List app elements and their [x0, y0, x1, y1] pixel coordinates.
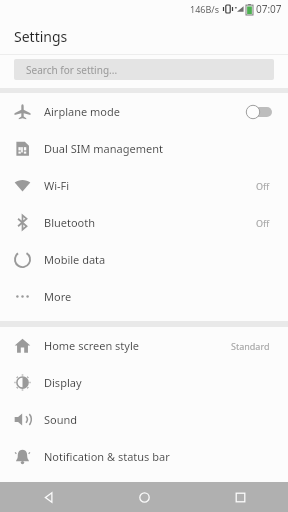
- staticText: More: [44, 289, 288, 304]
- button[interactable]: Display: [0, 364, 288, 401]
- staticText: Display: [44, 375, 288, 390]
- staticText: Airplane mode: [44, 104, 246, 119]
- button[interactable]: Sound: [0, 401, 288, 438]
- staticText: Dual SIM management: [44, 141, 288, 156]
- staticText: Off: [256, 180, 270, 192]
- button[interactable]: Search for setting...: [14, 59, 274, 80]
- staticText: Settings: [14, 27, 68, 46]
- staticText: Wi-Fi: [44, 178, 256, 193]
- button[interactable]: Bluetooth: [0, 204, 288, 241]
- button[interactable]: Airplane mode: [0, 93, 288, 130]
- button[interactable]: Back: [0, 482, 96, 512]
- button[interactable]: Notification & status bar: [0, 438, 288, 475]
- staticText: Mobile data: [44, 252, 288, 267]
- button[interactable]: Mobile data: [0, 241, 288, 278]
- staticText: Notification & status bar: [44, 449, 288, 464]
- button[interactable]: Home: [96, 482, 192, 512]
- staticText: Bluetooth: [44, 215, 256, 230]
- button[interactable]: Dual SIM management: [0, 130, 288, 167]
- staticText: Standard: [231, 340, 270, 352]
- button[interactable]: Wi-Fi: [0, 167, 288, 204]
- staticText: 07:07: [256, 2, 282, 16]
- button[interactable]: Recent apps: [192, 482, 288, 512]
- button[interactable]: Home screen style: [0, 327, 288, 364]
- staticText: Search for setting...: [26, 63, 118, 77]
- staticText: 146B/s: [190, 3, 219, 15]
- other: Airplane mode toggle: [246, 105, 272, 119]
- staticText: Off: [256, 217, 270, 229]
- button[interactable]: More: [0, 278, 288, 315]
- staticText: Sound: [44, 412, 288, 427]
- staticText: Home screen style: [44, 338, 231, 353]
